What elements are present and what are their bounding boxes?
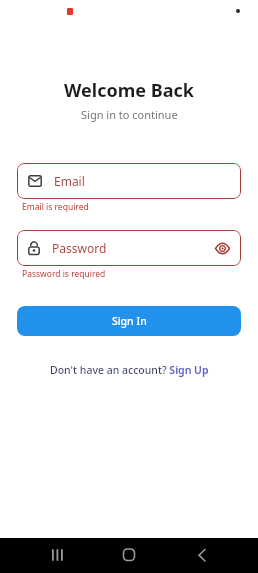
staticText: Password [52, 240, 107, 256]
button[interactable] [190, 538, 214, 573]
button[interactable] [46, 538, 70, 573]
staticText: Sign In [112, 314, 147, 328]
button[interactable]: Password [17, 230, 241, 266]
staticText: Password is required [22, 268, 106, 280]
button[interactable]: Don't have an account? Sign Up [0, 363, 258, 377]
staticText: Don't have an account? Sign Up [50, 363, 209, 377]
staticText: Email [54, 173, 85, 189]
staticText: Email is required [22, 201, 89, 213]
staticText: Welcome Back [64, 78, 194, 103]
staticText: Sign in to continue [81, 107, 178, 122]
button[interactable] [117, 538, 141, 573]
button[interactable]: Sign In [17, 306, 241, 336]
button[interactable]: Email [17, 163, 241, 199]
